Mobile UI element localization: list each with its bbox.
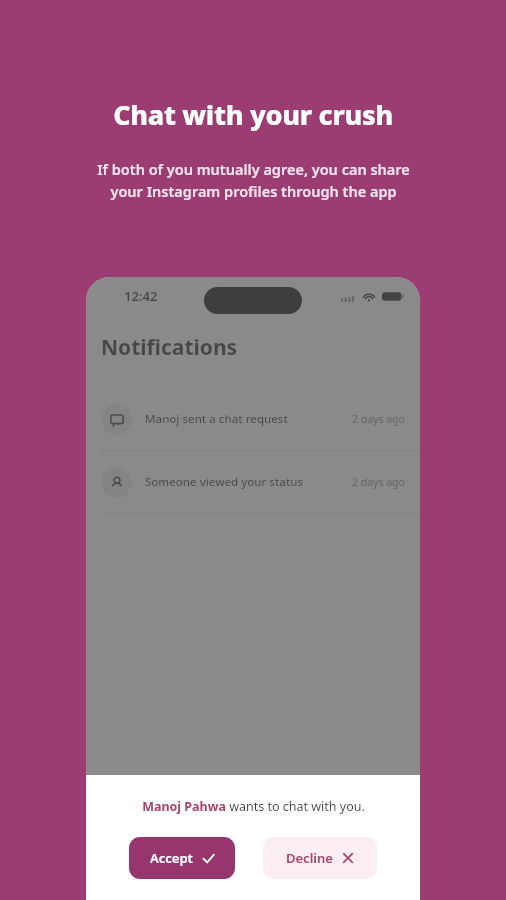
button[interactable]: Manoj sent a chat request [86, 388, 420, 450]
staticText: Chat with your crush [113, 96, 393, 133]
staticText: 2 days ago [352, 412, 405, 426]
staticText: Manoj Pahwa wants to chat with you. [142, 798, 365, 815]
button[interactable]: Someone viewed your status [86, 451, 420, 513]
staticText: 2 days ago [352, 475, 405, 489]
staticText: Notifications [101, 333, 238, 362]
staticText: Someone viewed your status [145, 474, 304, 490]
button[interactable]: Accept [129, 837, 235, 879]
staticText: Decline [286, 849, 333, 867]
staticText: Accept [150, 849, 193, 867]
button[interactable]: Decline [263, 837, 377, 879]
staticText: 12:42 [124, 287, 158, 305]
staticText: Manoj sent a chat request [145, 411, 288, 427]
staticText: If both of you mutually agree, you can s… [97, 159, 410, 201]
